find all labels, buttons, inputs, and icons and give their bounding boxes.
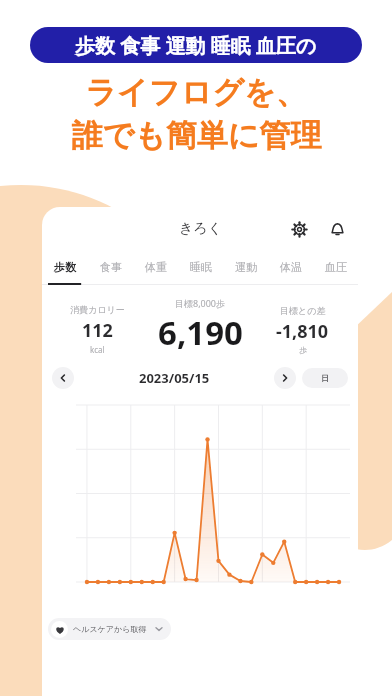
staticText: 血圧 <box>325 260 347 274</box>
button[interactable]: Settings <box>286 216 312 242</box>
staticText: 歩数 食事 運動 睡眠 血圧の <box>75 32 317 59</box>
button[interactable]: ヘルスケアから取得 <box>48 618 171 640</box>
button[interactable]: 食事 <box>88 251 133 283</box>
staticText: 6,190 <box>158 310 243 355</box>
button[interactable]: 歩数 食事 運動 睡眠 血圧の <box>30 27 362 63</box>
staticText: 2023/05/15 <box>139 369 210 387</box>
staticText: 体温 <box>280 260 302 274</box>
staticText: 誰でも簡単に管理 <box>71 116 322 155</box>
button[interactable]: 日 <box>302 368 348 388</box>
staticText: ヘルスケアから取得 <box>73 624 147 634</box>
staticText: 運動 <box>235 260 257 274</box>
button[interactable]: 運動 <box>223 251 268 283</box>
staticText: 日 <box>321 373 329 383</box>
staticText: 食事 <box>100 260 122 274</box>
staticText: きろく <box>179 220 222 238</box>
button[interactable]: 歩数 <box>42 251 88 283</box>
staticText: 目標8,000歩 <box>175 297 226 309</box>
staticText: 目標との差 <box>280 305 326 316</box>
staticText: ライフログを、 <box>85 73 307 112</box>
button[interactable]: 血圧 <box>313 251 358 283</box>
button[interactable]: Next day <box>274 367 296 389</box>
staticText: 消費カロリー <box>70 304 125 315</box>
staticText: 睡眠 <box>190 260 212 274</box>
staticText: 体重 <box>145 260 167 274</box>
button[interactable]: Previous day <box>52 367 74 389</box>
button[interactable]: Notifications <box>324 216 350 242</box>
button[interactable]: 体重 <box>133 251 178 283</box>
staticText: -1,810 <box>276 319 329 344</box>
staticText: 歩数 <box>54 260 76 274</box>
button[interactable]: 体温 <box>268 251 313 283</box>
staticText: kcal <box>90 344 105 355</box>
staticText: 112 <box>82 318 113 343</box>
button[interactable]: 睡眠 <box>178 251 223 283</box>
staticText: 歩 <box>299 345 307 355</box>
